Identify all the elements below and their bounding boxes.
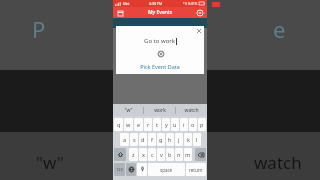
staticText: Pick Event Date xyxy=(140,63,180,70)
button[interactable]: v xyxy=(157,148,165,161)
button[interactable]: k xyxy=(184,133,192,146)
staticText: o xyxy=(191,121,195,128)
button[interactable]: f xyxy=(148,133,156,146)
staticText: 4:38 PM xyxy=(149,1,163,6)
button[interactable]: o xyxy=(189,118,197,131)
button[interactable]: Menu xyxy=(116,9,124,17)
button[interactable]: Event icon xyxy=(156,49,165,58)
staticText: space xyxy=(160,167,173,173)
button[interactable] xyxy=(113,18,207,28)
staticText: y xyxy=(165,121,168,128)
staticText: watch xyxy=(184,107,199,114)
staticText: g xyxy=(159,136,163,143)
staticText: w xyxy=(126,121,131,128)
button[interactable]: m xyxy=(184,148,192,161)
button[interactable]: Change keyboard xyxy=(126,163,136,176)
staticText: e xyxy=(137,121,141,128)
button[interactable]: r xyxy=(144,118,152,131)
staticText: h xyxy=(168,136,172,143)
button[interactable]: work xyxy=(144,104,175,116)
button[interactable]: "w" xyxy=(113,104,143,116)
button[interactable]: Shift xyxy=(114,148,126,161)
button[interactable]: Numbers xyxy=(114,163,125,176)
button[interactable]: n xyxy=(175,148,183,161)
staticText: e xyxy=(273,14,286,44)
staticText: q xyxy=(117,121,121,128)
button[interactable]: h xyxy=(166,133,174,146)
button[interactable]: a xyxy=(120,133,129,146)
button[interactable]: t xyxy=(153,118,161,131)
staticText: My Events xyxy=(148,9,173,16)
staticText: x xyxy=(142,151,145,158)
staticText: p xyxy=(200,121,204,128)
staticText: b xyxy=(168,151,172,158)
button[interactable]: p xyxy=(198,118,206,131)
staticText: s xyxy=(133,136,136,143)
staticText: 123 xyxy=(116,167,123,172)
staticText: i xyxy=(183,121,185,128)
staticText: watch xyxy=(254,151,302,174)
staticText: * 5 % 81% xyxy=(183,2,198,6)
button[interactable]: Pick Event Date xyxy=(116,61,204,71)
staticText: t xyxy=(156,121,158,128)
staticText: P xyxy=(32,14,46,44)
staticText: Mint xyxy=(123,2,130,6)
staticText: f xyxy=(151,136,153,143)
button[interactable]: c xyxy=(148,148,156,161)
staticText: d xyxy=(141,136,145,143)
button[interactable]: watch xyxy=(176,104,207,116)
button[interactable]: s xyxy=(130,133,138,146)
staticText: u xyxy=(173,121,177,128)
staticText: c xyxy=(151,151,154,158)
button[interactable]: j xyxy=(175,133,183,146)
button[interactable]: d xyxy=(139,133,147,146)
button[interactable]: b xyxy=(166,148,174,161)
staticText: k xyxy=(187,136,190,143)
staticText: v xyxy=(160,151,163,158)
staticText: z xyxy=(132,151,135,158)
staticText: Go to work xyxy=(144,37,175,45)
button[interactable]: q xyxy=(114,118,123,131)
staticText: j xyxy=(178,136,180,143)
button[interactable]: w xyxy=(124,118,133,131)
staticText: return xyxy=(189,167,203,173)
button[interactable]: return xyxy=(186,163,206,176)
staticText: l xyxy=(196,136,198,143)
button[interactable]: y xyxy=(162,118,170,131)
button[interactable]: u xyxy=(171,118,179,131)
button[interactable] xyxy=(137,163,147,176)
button[interactable]: i xyxy=(180,118,188,131)
button[interactable]: l xyxy=(193,133,201,146)
button[interactable]: space xyxy=(148,163,185,176)
button[interactable]: Close xyxy=(195,27,202,34)
button[interactable]: Backspace xyxy=(195,148,206,161)
staticText: work xyxy=(154,107,166,114)
button[interactable]: x xyxy=(139,148,147,161)
staticText: n xyxy=(177,151,181,158)
staticText: "w" xyxy=(36,151,64,174)
button[interactable]: e xyxy=(134,118,143,131)
staticText: a xyxy=(123,136,127,143)
staticText: r xyxy=(147,121,150,128)
staticText: "w" xyxy=(124,107,133,114)
button[interactable]: g xyxy=(157,133,165,146)
staticText: m xyxy=(185,151,191,158)
button[interactable]: Add event xyxy=(196,9,204,17)
button[interactable]: z xyxy=(129,148,138,161)
